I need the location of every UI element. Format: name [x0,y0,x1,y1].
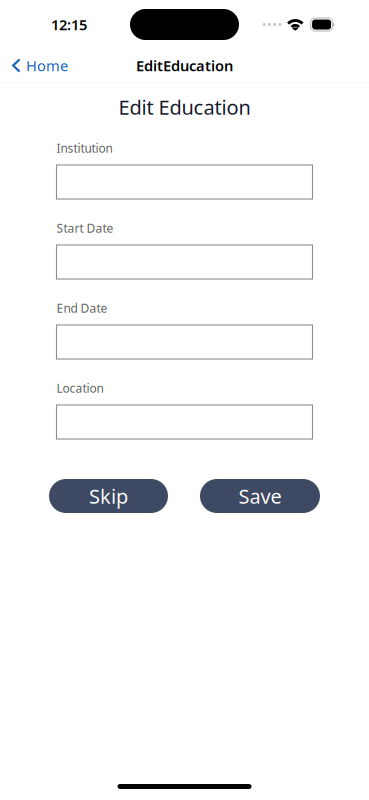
staticText: Edit Education [118,94,250,120]
button[interactable]: Location [56,405,312,439]
staticText: Home [26,56,68,75]
button[interactable]: Home [0,49,78,82]
button[interactable]: Start Date [56,245,312,279]
staticText: EditEducation [136,56,233,75]
button[interactable]: End Date [56,325,312,359]
staticText: Start Date [56,220,113,236]
staticText: Institution [56,140,112,156]
button[interactable]: Skip [49,479,168,513]
button[interactable]: Institution [56,165,312,199]
staticText: End Date [56,300,107,316]
staticText: Location [56,380,103,396]
button[interactable]: Save [200,479,320,513]
staticText: Skip [89,483,128,509]
staticText: 12:15 [51,15,87,34]
staticText: Save [238,483,281,509]
